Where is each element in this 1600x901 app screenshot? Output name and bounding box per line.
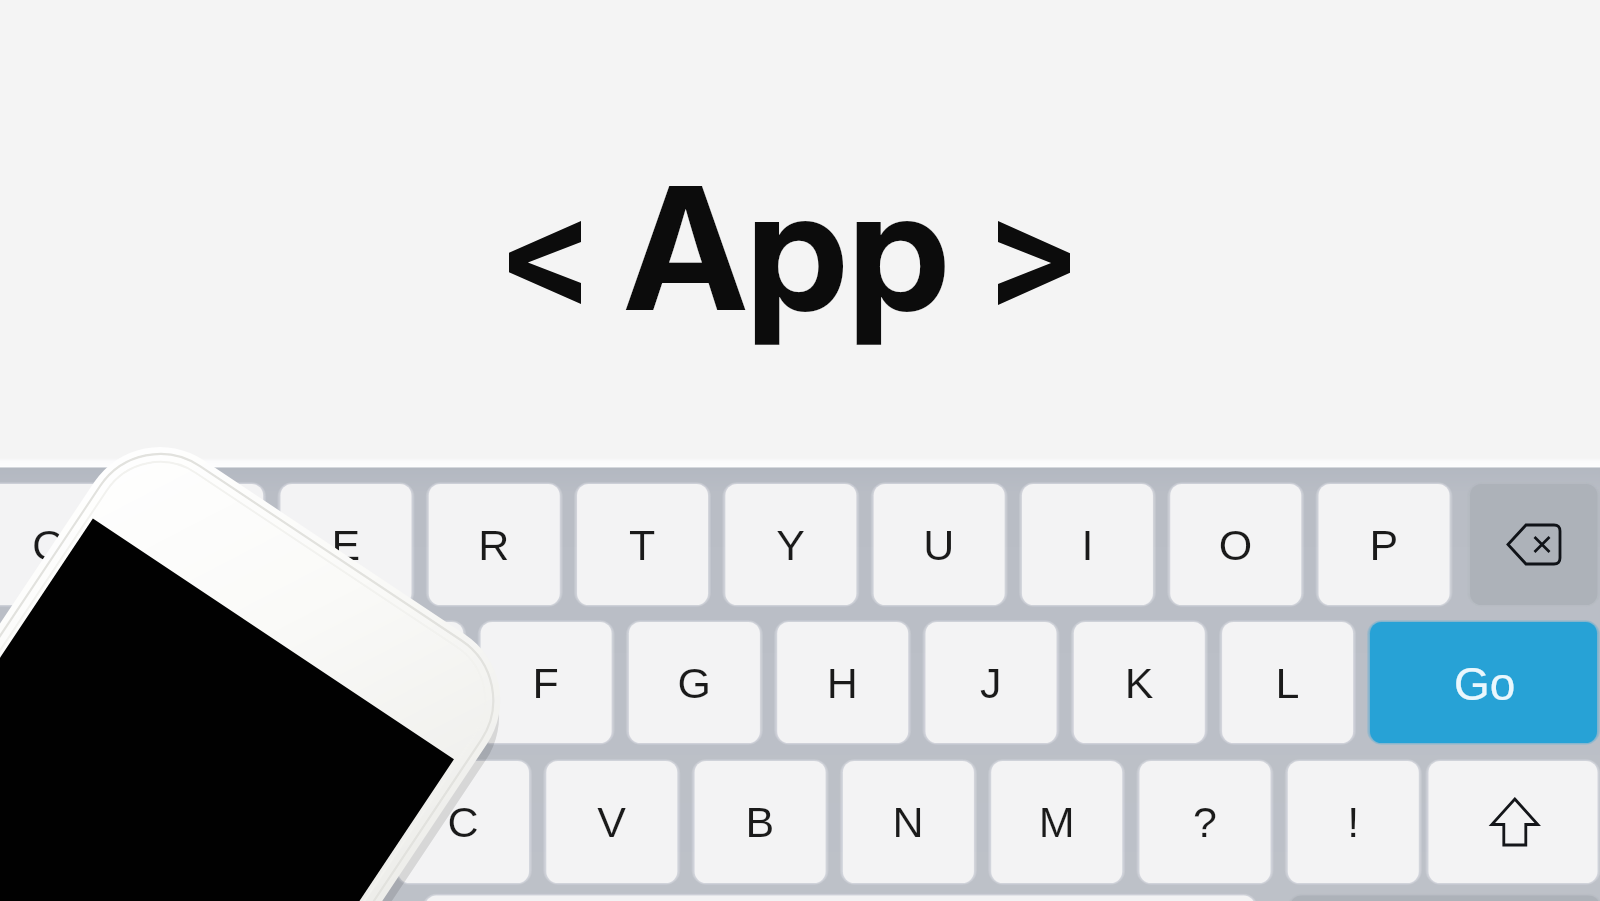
button[interactable]: C — [398, 761, 529, 883]
button[interactable]: F — [481, 622, 612, 743]
button[interactable]: U — [874, 484, 1005, 605]
button[interactable]: J — [926, 622, 1057, 743]
button[interactable]: P — [1319, 484, 1450, 605]
button[interactable]: E — [280, 484, 411, 605]
button[interactable]: X — [250, 761, 381, 883]
button[interactable]: G — [629, 622, 760, 743]
button[interactable]: Q — [0, 484, 115, 605]
button[interactable]: Backspace — [1470, 484, 1598, 605]
button[interactable]: N — [843, 761, 974, 883]
button[interactable]: Shift — [1429, 761, 1598, 883]
button[interactable]: L — [1222, 622, 1353, 743]
button[interactable]: V — [546, 761, 677, 883]
button[interactable]: W — [132, 484, 263, 605]
button[interactable]: R — [429, 484, 560, 605]
button[interactable]: K — [1074, 622, 1205, 743]
button[interactable]: Go — [1370, 622, 1597, 743]
button[interactable]: ! — [1288, 761, 1419, 883]
button[interactable]: H — [777, 622, 908, 743]
button[interactable]: T — [577, 484, 708, 605]
button[interactable]: M — [991, 761, 1122, 883]
button[interactable]: I — [1022, 484, 1153, 605]
button[interactable]: S — [184, 622, 315, 743]
button[interactable]: D — [332, 622, 463, 743]
button[interactable]: ? — [1140, 761, 1271, 883]
button[interactable]: Space — [425, 896, 1255, 901]
button[interactable]: O — [1170, 484, 1301, 605]
button[interactable]: Y — [725, 484, 856, 605]
button[interactable]: B — [695, 761, 826, 883]
